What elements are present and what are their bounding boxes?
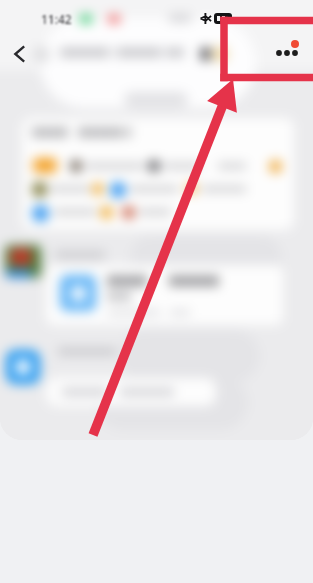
button[interactable]: More options <box>270 40 300 66</box>
staticText: 11:42 <box>41 11 72 27</box>
button[interactable]: Back <box>8 40 36 68</box>
